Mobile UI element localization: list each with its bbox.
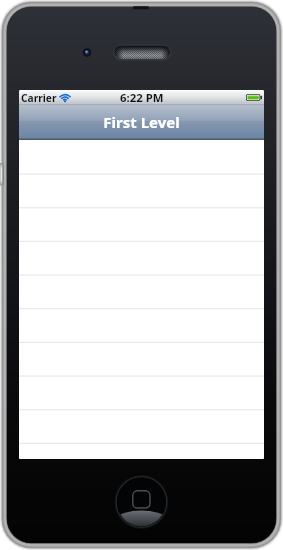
button[interactable] — [19, 412, 264, 446]
staticText: First Level — [103, 112, 180, 132]
button[interactable] — [19, 378, 264, 412]
button[interactable] — [19, 208, 264, 242]
button[interactable] — [19, 242, 264, 276]
button[interactable] — [19, 344, 264, 378]
button[interactable] — [19, 276, 264, 310]
button[interactable] — [19, 174, 264, 208]
staticText: Carrier — [21, 91, 57, 105]
staticText: 6:22 PM — [120, 90, 164, 105]
button[interactable] — [19, 310, 264, 344]
